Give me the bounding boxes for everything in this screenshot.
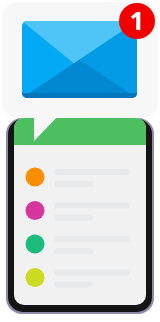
button[interactable]: Message 3	[22, 230, 137, 259]
button[interactable]: Message 1	[22, 163, 137, 192]
button[interactable]: Message 4	[22, 264, 137, 293]
button[interactable]: 1 unread notification	[119, 3, 155, 39]
button[interactable]: Message 2	[22, 197, 137, 226]
staticText: 1	[119, 3, 155, 39]
